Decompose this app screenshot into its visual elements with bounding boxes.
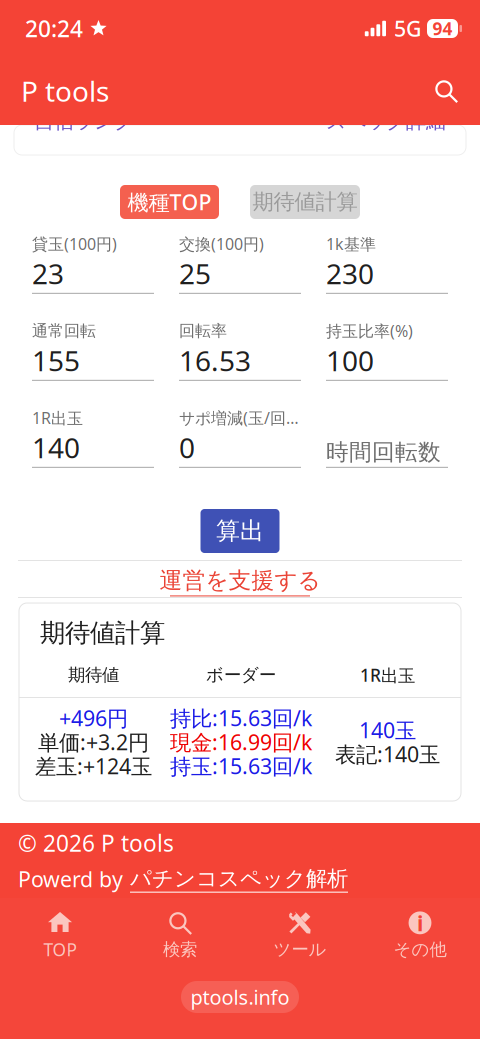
staticText: その他 <box>393 939 446 960</box>
button[interactable]: 機種TOP <box>120 185 219 219</box>
staticText: 1k基準 <box>326 233 376 254</box>
button[interactable]: 持玉比率(%) <box>326 321 448 381</box>
staticText: 100 <box>326 342 374 379</box>
staticText: 23 <box>32 255 64 292</box>
staticText: 230 <box>326 255 374 292</box>
staticText: 持玉:15.63回/k <box>170 752 312 780</box>
staticText: 表記:140玉 <box>335 740 440 768</box>
button[interactable]: 検索 <box>120 906 240 964</box>
button[interactable]: 通常回転 <box>32 321 154 381</box>
staticText: 機種TOP <box>127 188 211 216</box>
button[interactable]: 貸玉(100円) <box>32 234 154 294</box>
button[interactable]: 算出 <box>200 509 279 553</box>
button[interactable]: サポ増減(玉/回… <box>179 408 301 468</box>
staticText: スペック詳細 <box>326 109 446 134</box>
button[interactable]: 1k基準 <box>326 234 448 294</box>
staticText: 回転率 <box>179 321 227 341</box>
staticText: 5G <box>394 14 422 43</box>
staticText: 期待値 <box>68 664 119 686</box>
button[interactable]: 回転率 <box>179 321 301 381</box>
button[interactable]: 時間回転数 <box>326 408 448 468</box>
button[interactable]: 自信ランク <box>0 125 480 155</box>
staticText: 差玉:+124玉 <box>35 752 152 780</box>
staticText: 通常回転 <box>32 321 96 341</box>
staticText: 持比:15.63回/k <box>170 704 312 732</box>
staticText: +496円 <box>59 704 128 732</box>
staticText: 20:24 <box>25 13 83 43</box>
button[interactable]: 交換(100円) <box>179 234 301 294</box>
staticText: 140玉 <box>359 716 416 744</box>
staticText: i <box>417 909 423 937</box>
button[interactable]: TOP <box>0 906 120 964</box>
staticText: サポ増減(玉/回… <box>179 407 299 428</box>
staticText: ボーダー <box>206 664 276 686</box>
staticText: 94 <box>432 17 452 40</box>
staticText: 期待値計算 <box>252 189 357 215</box>
staticText: ptools.info <box>190 984 289 1010</box>
staticText: 時間回転数 <box>326 438 441 466</box>
button[interactable]: 期待値計算 <box>250 185 360 219</box>
staticText: 自信ランク <box>34 109 134 134</box>
button[interactable]: パチンコスペック解析 <box>130 865 348 893</box>
staticText: ツール <box>273 939 326 960</box>
staticText: 貸玉(100円) <box>32 233 117 254</box>
staticText: 25 <box>179 255 211 292</box>
staticText: 1R出玉 <box>360 663 415 686</box>
staticText: 検索 <box>163 939 197 960</box>
staticText: TOP <box>43 938 76 961</box>
button[interactable]: ツール <box>240 906 360 964</box>
button[interactable]: Search <box>423 68 469 114</box>
staticText: 持玉比率(%) <box>326 320 413 341</box>
staticText: 期待値計算 <box>40 617 165 648</box>
staticText: P tools <box>21 72 109 110</box>
staticText: 交換(100円) <box>179 233 264 254</box>
staticText: © 2026 P tools <box>18 828 174 858</box>
staticText: 1R出玉 <box>32 407 83 428</box>
button[interactable]: i <box>360 906 480 964</box>
staticText: 単価:+3.2円 <box>38 728 149 756</box>
staticText: 0 <box>179 429 195 466</box>
staticText: Powerd by <box>18 865 123 893</box>
button[interactable]: 運営を支援する <box>159 569 320 594</box>
staticText: 140 <box>32 429 80 466</box>
button[interactable]: 1R出玉 <box>32 408 154 468</box>
button[interactable]: ptools.info <box>181 981 299 1013</box>
staticText: 155 <box>32 342 80 379</box>
staticText: パチンコスペック解析 <box>130 865 348 892</box>
staticText: 16.53 <box>179 342 251 379</box>
staticText: 算出 <box>216 516 264 546</box>
staticText: 現金:16.99回/k <box>170 728 312 756</box>
staticText: 運営を支援する <box>159 567 320 594</box>
